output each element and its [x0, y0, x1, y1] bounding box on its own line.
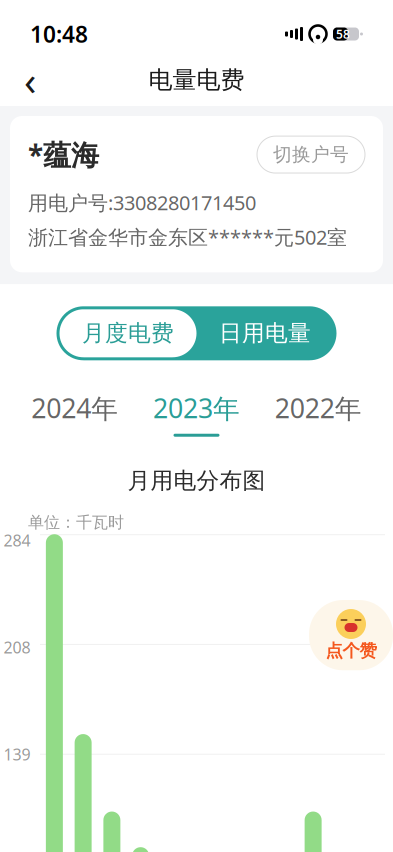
staticText: ‹ [24, 53, 36, 106]
staticText: 用电户号:3308280171450 [28, 189, 256, 216]
staticText: 月用电分布图 [127, 467, 265, 494]
staticText: 浙江省金华市金东区******元502室 [28, 224, 347, 250]
staticText: 2022年 [275, 390, 362, 426]
staticText: 2024年 [31, 390, 118, 426]
staticText: *蕴海 [28, 136, 99, 173]
button[interactable]: 2024年 [14, 384, 136, 443]
button[interactable]: 2023年 [136, 384, 257, 443]
staticText: 切换户号 [273, 143, 349, 166]
staticText: 10:48 [30, 19, 88, 49]
button[interactable]: 返回 [8, 58, 52, 102]
staticText: 139 [3, 744, 30, 765]
button[interactable]: 切换户号 [257, 136, 365, 173]
button[interactable]: 2022年 [257, 384, 379, 443]
button[interactable]: 月度电费 [59, 309, 196, 357]
staticText: 电量电费 [148, 65, 244, 95]
staticText: 2023年 [153, 390, 240, 426]
staticText: 208 [3, 637, 30, 658]
staticText: 月度电费 [82, 319, 174, 347]
staticText: 单位：千瓦时 [28, 513, 124, 532]
staticText: 284 [3, 530, 30, 551]
staticText: 日用电量 [219, 319, 311, 347]
staticText: 58 [336, 26, 350, 42]
button[interactable]: 日用电量 [196, 309, 333, 357]
button[interactable]: 点个赞 [309, 600, 393, 670]
staticText: 点个赞 [325, 640, 376, 661]
